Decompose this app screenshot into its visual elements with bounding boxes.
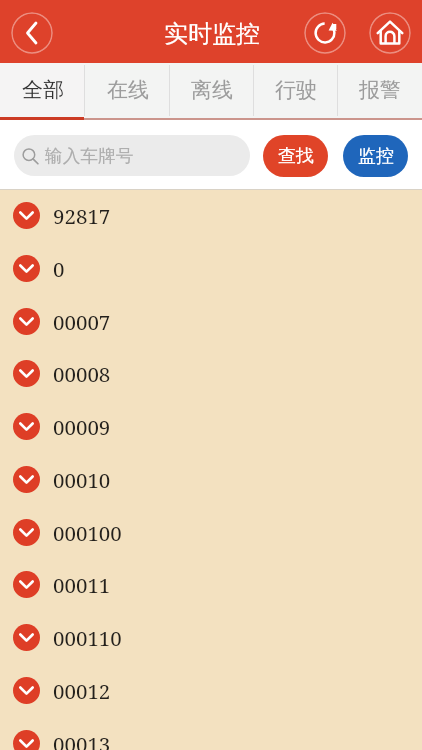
staticText: 离线 bbox=[191, 77, 233, 103]
button[interactable]: Refresh bbox=[304, 12, 346, 54]
staticText: 00007 bbox=[53, 308, 111, 336]
button[interactable]: 000100 bbox=[0, 506, 422, 559]
button[interactable]: 00010 bbox=[0, 453, 422, 506]
staticText: 000100 bbox=[53, 519, 122, 547]
staticText: 在线 bbox=[107, 77, 149, 103]
button[interactable]: 00013 bbox=[0, 717, 422, 750]
button[interactable]: 0 bbox=[0, 242, 422, 295]
button[interactable]: 00008 bbox=[0, 347, 422, 400]
button[interactable]: 监控 bbox=[343, 135, 408, 177]
staticText: 查找 bbox=[278, 145, 314, 168]
button[interactable]: 00011 bbox=[0, 558, 422, 611]
staticText: 0 bbox=[53, 255, 65, 283]
staticText: 00010 bbox=[53, 466, 111, 494]
staticText: 00012 bbox=[53, 677, 111, 705]
button[interactable]: 00009 bbox=[0, 400, 422, 453]
staticText: 00009 bbox=[53, 413, 111, 441]
staticText: 00011 bbox=[53, 571, 111, 599]
button[interactable]: Home bbox=[369, 12, 411, 54]
button[interactable]: 00012 bbox=[0, 664, 422, 717]
staticText: 报警 bbox=[359, 77, 401, 103]
staticText: 00013 bbox=[53, 730, 111, 750]
button[interactable]: 00007 bbox=[0, 295, 422, 348]
staticText: 92817 bbox=[53, 202, 111, 230]
staticText: 000110 bbox=[53, 624, 122, 652]
button[interactable]: 输入车牌号 bbox=[14, 135, 250, 176]
staticText: 监控 bbox=[358, 145, 394, 168]
button[interactable]: Back bbox=[11, 12, 53, 54]
button[interactable]: 查找 bbox=[263, 135, 328, 177]
staticText: 行驶 bbox=[275, 77, 317, 103]
staticText: 实时监控 bbox=[164, 19, 260, 49]
button[interactable]: 92817 bbox=[0, 189, 422, 242]
button[interactable]: 000110 bbox=[0, 611, 422, 664]
button[interactable]: 在线 bbox=[85, 63, 170, 120]
button[interactable]: 报警 bbox=[338, 63, 422, 120]
staticText: 输入车牌号 bbox=[45, 145, 134, 167]
staticText: 全部 bbox=[22, 77, 64, 103]
button[interactable]: 全部 bbox=[0, 63, 85, 120]
button[interactable]: 离线 bbox=[170, 63, 254, 120]
staticText: 00008 bbox=[53, 360, 111, 388]
button[interactable]: 行驶 bbox=[254, 63, 338, 120]
